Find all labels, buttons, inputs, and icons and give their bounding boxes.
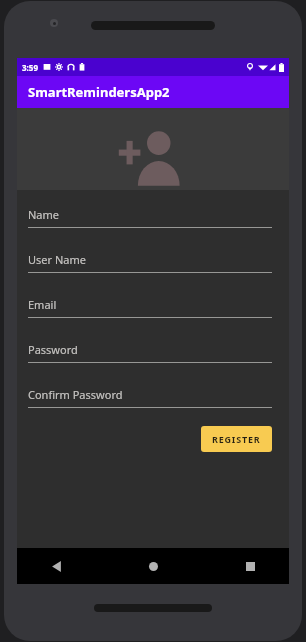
- button[interactable]: User Name: [28, 252, 272, 273]
- button[interactable]: Back: [39, 549, 73, 583]
- staticText: Email: [28, 297, 57, 312]
- staticText: 3:59: [22, 62, 38, 73]
- staticText: SmartRemindersApp2: [28, 83, 170, 101]
- button[interactable]: Confirm Password: [28, 387, 272, 408]
- other: Add profile photo: [117, 128, 189, 184]
- staticText: User Name: [28, 252, 86, 267]
- button[interactable]: SmartRemindersApp2: [17, 76, 289, 108]
- button[interactable]: REGISTER: [201, 426, 272, 452]
- button[interactable]: Home: [136, 549, 170, 583]
- staticText: Confirm Password: [28, 387, 123, 402]
- staticText: REGISTER: [212, 433, 261, 445]
- button[interactable]: Name: [28, 207, 272, 228]
- staticText: Name: [28, 207, 60, 222]
- staticText: Password: [28, 342, 78, 357]
- button[interactable]: Email: [28, 297, 272, 318]
- button[interactable]: Recent apps: [233, 549, 267, 583]
- button[interactable]: Password: [28, 342, 272, 363]
